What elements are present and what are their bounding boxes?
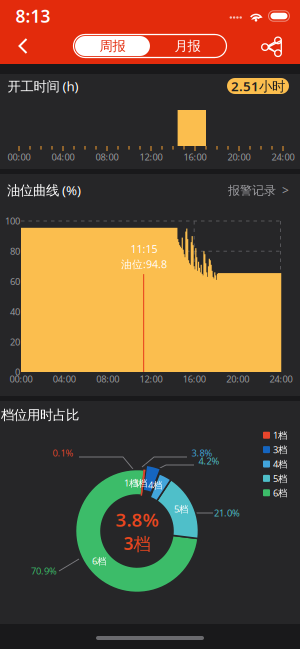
button[interactable]: 月报 [150, 36, 225, 56]
staticText: 8:13 [15, 4, 50, 27]
staticText: 04:00 [53, 373, 76, 385]
staticText: 油位曲线 (%) [7, 181, 81, 199]
staticText: 档位用时占比 [1, 407, 79, 423]
staticText: 3档 [273, 443, 287, 456]
staticText: 20:00 [226, 373, 249, 385]
staticText: 0 [15, 366, 20, 378]
staticText: 5档 [174, 503, 188, 515]
staticText: 60 [10, 275, 20, 288]
staticText: 油位:94.8 [121, 257, 167, 271]
staticText: 00:00 [7, 151, 30, 163]
staticText: 4档 [148, 479, 162, 491]
staticText: 12:00 [139, 151, 162, 163]
staticText: 100 [5, 215, 20, 227]
staticText: 报警记录 > [228, 182, 289, 198]
staticText: 16:00 [183, 373, 206, 385]
button[interactable]: Back [6, 30, 40, 62]
staticText: 20 [10, 336, 20, 348]
staticText: 0.1% [52, 447, 73, 459]
staticText: 00:00 [9, 373, 32, 385]
staticText: 6档 [273, 487, 287, 499]
staticText: 16:00 [183, 151, 206, 163]
staticText: 4档 [273, 458, 287, 470]
button[interactable]: 报警记录 > [223, 181, 289, 199]
staticText: 80 [10, 245, 20, 257]
staticText: 月报 [174, 38, 200, 54]
staticText: 08:00 [96, 373, 119, 385]
staticText: 24:00 [271, 151, 294, 163]
staticText: 3.8% [115, 507, 158, 532]
staticText: 24:00 [269, 373, 292, 385]
staticText: 1档 [124, 477, 138, 489]
staticText: 11:15 [130, 242, 157, 256]
staticText: 20:00 [227, 151, 250, 163]
staticText: 2.51小时 [231, 77, 285, 95]
staticText: 21.0% [214, 507, 240, 519]
button[interactable]: 周报 [75, 36, 150, 56]
staticText: 周报 [99, 38, 125, 54]
staticText: 40 [10, 305, 20, 318]
staticText: 70.9% [31, 565, 57, 577]
button[interactable]: Share [257, 31, 287, 61]
staticText: 12:00 [139, 373, 162, 385]
staticText: 6档 [92, 555, 106, 567]
staticText: 4.2% [198, 455, 219, 467]
staticText: 3档 [133, 477, 147, 489]
staticText: 开工时间 (h) [7, 77, 78, 95]
staticText: 1档 [273, 429, 287, 441]
staticText: 3档 [123, 532, 150, 555]
staticText: 5档 [273, 472, 287, 485]
staticText: 3.8% [191, 447, 212, 459]
staticText: 08:00 [95, 151, 118, 163]
staticText: 04:00 [51, 151, 74, 163]
